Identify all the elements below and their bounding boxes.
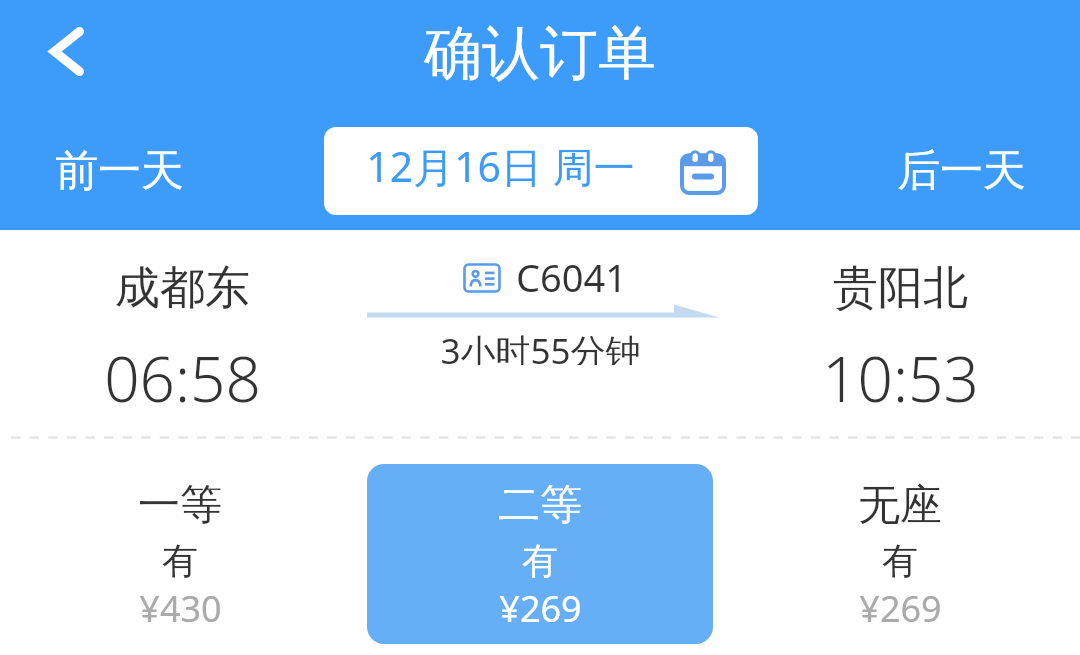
staticText: 无座 bbox=[858, 479, 942, 532]
button[interactable]: Back bbox=[28, 12, 106, 90]
button[interactable]: 一等 bbox=[60, 464, 300, 654]
staticText: 12月16日 周一 bbox=[366, 138, 635, 190]
button[interactable]: 后一天 bbox=[871, 127, 1051, 215]
button[interactable]: 无座 bbox=[780, 464, 1020, 654]
staticText: ¥430 bbox=[139, 584, 222, 632]
staticText: 贵阳北 bbox=[833, 260, 968, 317]
staticText: 确认订单 bbox=[424, 17, 656, 90]
staticText: ¥269 bbox=[499, 584, 582, 632]
staticText: 二等 bbox=[498, 479, 582, 532]
button[interactable]: 二等 bbox=[367, 464, 713, 644]
staticText: ¥269 bbox=[859, 584, 942, 632]
staticText: 前一天 bbox=[55, 144, 184, 198]
staticText: 有 bbox=[522, 538, 558, 583]
button[interactable]: 前一天 bbox=[29, 127, 209, 215]
staticText: 3小时55分钟 bbox=[440, 327, 641, 365]
staticText: 成都东 bbox=[115, 260, 250, 317]
staticText: 10:53 bbox=[822, 336, 979, 416]
button[interactable]: 12月16日 周一 bbox=[324, 127, 758, 215]
staticText: 有 bbox=[882, 538, 918, 583]
staticText: 一等 bbox=[138, 479, 222, 532]
staticText: C6041 bbox=[516, 251, 627, 293]
staticText: 06:58 bbox=[104, 336, 261, 416]
staticText: 后一天 bbox=[897, 144, 1026, 198]
staticText: 有 bbox=[162, 538, 198, 583]
